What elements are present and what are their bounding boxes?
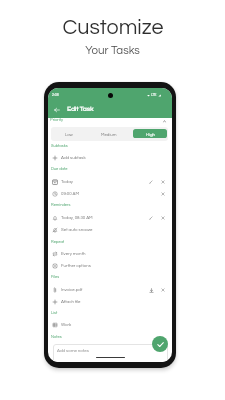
button[interactable]: Further options <box>48 260 172 271</box>
button[interactable]: Today <box>48 176 172 187</box>
button[interactable]: Edit <box>148 215 154 221</box>
button[interactable]: Medium <box>89 129 128 138</box>
staticText: List <box>51 311 58 315</box>
button[interactable]: Remove <box>160 215 166 221</box>
staticText: Your Tasks <box>85 45 140 57</box>
staticText: Add subtask <box>61 155 86 160</box>
button[interactable]: High <box>133 129 167 138</box>
staticText: Today <box>61 179 73 184</box>
staticText: 09:00 AM <box>61 191 79 196</box>
staticText: Edit Task <box>67 106 94 113</box>
button[interactable]: Add some notes <box>53 344 168 362</box>
staticText: Work <box>61 322 72 327</box>
staticText: Customize <box>62 16 164 38</box>
staticText: Medium <box>101 132 117 136</box>
staticText: Invoice.pdf <box>61 287 83 292</box>
button[interactable]: Set auto snooze <box>48 224 172 235</box>
button[interactable]: Every month <box>48 248 172 259</box>
staticText: Files <box>51 275 60 279</box>
button[interactable]: Invoice.pdf <box>48 284 172 295</box>
button[interactable]: Edit <box>148 179 154 185</box>
staticText: Every month <box>61 251 86 256</box>
staticText: Reminders <box>51 203 71 207</box>
staticText: Set auto snooze <box>61 227 93 232</box>
button[interactable]: Work <box>48 319 172 330</box>
staticText: Low <box>65 132 73 136</box>
staticText: Further options <box>61 263 91 268</box>
staticText: LTE <box>151 93 157 97</box>
staticText: Add some notes <box>57 348 89 353</box>
button[interactable]: 09:00 AM <box>48 188 172 199</box>
button[interactable]: Low <box>49 129 88 138</box>
staticText: 2:08 <box>52 93 59 97</box>
staticText: Today, 08:30 AM <box>61 215 93 220</box>
button[interactable]: Remove <box>160 179 166 185</box>
staticText: High <box>146 132 155 136</box>
button[interactable]: Back <box>52 105 61 114</box>
staticText: Priority <box>50 118 64 122</box>
button[interactable]: Add subtask <box>48 152 172 163</box>
button[interactable]: Today, 08:30 AM <box>48 212 172 223</box>
button[interactable]: Save task <box>152 336 168 352</box>
staticText: Subtasks <box>51 144 68 148</box>
staticText: Attach file <box>61 299 81 304</box>
staticText: Due date <box>51 167 68 171</box>
button[interactable]: Attach file <box>48 296 172 307</box>
button[interactable]: Download <box>148 287 154 293</box>
button[interactable]: Remove <box>160 287 166 293</box>
button[interactable]: Remove <box>160 191 166 197</box>
button[interactable]: Collapse priority <box>161 118 167 124</box>
staticText: Notes <box>51 335 62 339</box>
staticText: Repeat <box>51 240 65 244</box>
